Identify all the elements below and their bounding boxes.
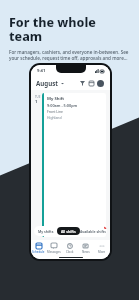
staticText: TUE bbox=[35, 95, 41, 99]
staticText: All shifts bbox=[61, 229, 76, 234]
staticText: For managers, cashiers, and everyone in-… bbox=[9, 49, 130, 61]
staticText: News bbox=[82, 250, 90, 254]
button[interactable]: Schedule bbox=[31, 240, 46, 256]
staticText: Messages bbox=[47, 250, 61, 254]
staticText: Highland bbox=[47, 115, 62, 120]
button[interactable]: Messages bbox=[46, 240, 62, 256]
button[interactable]: Available shifts bbox=[80, 227, 106, 235]
button[interactable]: Filter bbox=[78, 79, 87, 88]
staticText: For the whole team bbox=[9, 14, 130, 45]
staticText: Available shifts bbox=[80, 229, 106, 234]
staticText: 9:00am - 5:00pm bbox=[47, 103, 78, 108]
staticText: My Shift bbox=[47, 96, 65, 102]
staticText: Front Line bbox=[47, 109, 64, 114]
button[interactable]: More bbox=[94, 240, 110, 256]
staticText: August bbox=[36, 79, 59, 87]
button[interactable]: News bbox=[78, 240, 94, 256]
staticText: 1 bbox=[35, 99, 38, 105]
staticText: Schedule bbox=[32, 250, 45, 254]
button[interactable]: My Shift bbox=[42, 93, 106, 237]
staticText: My shifts bbox=[38, 229, 54, 234]
staticText: More bbox=[98, 250, 106, 254]
button[interactable]: Calendar bbox=[87, 79, 96, 88]
button[interactable]: All shifts bbox=[57, 227, 80, 235]
button[interactable]: Clock bbox=[62, 240, 78, 256]
button[interactable]: August bbox=[36, 79, 64, 87]
button[interactable]: My shifts bbox=[35, 227, 57, 235]
staticText: Clock bbox=[66, 250, 74, 254]
staticText: 9:41 bbox=[37, 68, 46, 74]
button[interactable]: Profile bbox=[96, 79, 105, 88]
